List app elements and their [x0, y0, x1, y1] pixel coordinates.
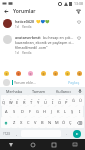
staticText: P [65, 100, 68, 105]
button[interactable]: G [34, 106, 41, 117]
staticText: L [64, 109, 67, 114]
button[interactable]: Filter [75, 8, 82, 15]
button[interactable]: F [26, 106, 34, 117]
staticText: E [16, 100, 19, 105]
button[interactable]: X [18, 117, 25, 128]
button[interactable]: 1 [1, 95, 7, 106]
button[interactable]: Like [76, 35, 82, 41]
button[interactable]: Back [3, 8, 10, 15]
staticText: Yanıtla [22, 51, 32, 55]
button[interactable]: hatice0428 [0, 16, 85, 32]
button[interactable]: Keyboard [64, 139, 85, 150]
staticText: Ü [79, 98, 82, 103]
button[interactable]: Ü [77, 95, 84, 106]
staticText: A [5, 109, 8, 114]
button[interactable]: Ğ [70, 95, 77, 106]
button[interactable]: Kullanıcı [51, 89, 76, 94]
staticText: 1d [15, 51, 19, 55]
button[interactable]: 0 [63, 95, 70, 106]
button[interactable]: J [48, 106, 55, 117]
button[interactable]: Z [11, 117, 18, 128]
button[interactable]: K [55, 106, 62, 117]
button[interactable]: Back [0, 139, 22, 150]
staticText: Tamam [32, 89, 46, 94]
button[interactable]: 8 [49, 95, 56, 106]
button[interactable]: Emoji [3, 70, 9, 76]
staticText: 4 [24, 97, 26, 100]
staticText: G [36, 109, 39, 114]
staticText: R [23, 100, 26, 105]
button[interactable]: D [18, 106, 26, 117]
button[interactable]: Emoji [15, 70, 21, 76]
staticText: 9 [59, 97, 61, 100]
staticText: I [52, 100, 54, 105]
button[interactable]: , [12, 129, 20, 138]
staticText: Ğ [72, 98, 75, 103]
button[interactable]: Voice input [76, 89, 83, 93]
button[interactable]: M [53, 117, 60, 128]
button[interactable]: C [25, 117, 32, 128]
staticText: filmadilmedil .com" [15, 45, 48, 50]
button[interactable]: Emoji [40, 70, 46, 76]
button[interactable]: Like [76, 19, 82, 25]
staticText: F [29, 109, 32, 114]
button[interactable]: 9 [56, 95, 63, 106]
staticText: Yorum ekle... [14, 80, 66, 85]
staticText: N [48, 120, 52, 125]
button[interactable]: Ş [69, 106, 76, 117]
button[interactable]: 2 [7, 95, 14, 106]
staticText: Ç [69, 120, 72, 125]
button[interactable]: Shift [1, 117, 11, 128]
button[interactable]: Paylaş [66, 79, 82, 86]
staticText: Q [2, 100, 6, 105]
button[interactable]: Emoji [76, 70, 82, 76]
staticText: Kullanıcı [56, 89, 71, 94]
staticText: Ö [62, 120, 66, 125]
button[interactable]: Ç [67, 117, 74, 128]
staticText: X [20, 120, 23, 125]
staticText: hatice0428 [15, 19, 34, 24]
button[interactable]: Emoji [64, 70, 70, 76]
staticText: S [13, 109, 16, 114]
staticText: 7 [45, 97, 47, 100]
staticText: H [43, 109, 46, 114]
button[interactable]: 4 [21, 95, 28, 106]
staticText: 5 [31, 97, 33, 100]
button[interactable]: B [39, 117, 46, 128]
staticText: B [41, 120, 44, 125]
staticText: V [34, 120, 37, 125]
button[interactable]: S [10, 106, 18, 117]
button[interactable]: A [2, 106, 10, 117]
button[interactable]: 3 [14, 95, 21, 106]
button[interactable]: L [62, 106, 69, 117]
staticText: . [66, 131, 67, 136]
button[interactable]: N [46, 117, 53, 128]
button[interactable]: H [41, 106, 48, 117]
button[interactable]: 7 [42, 95, 49, 106]
button[interactable]: Backspace [74, 117, 84, 128]
button[interactable]: avatarserbestt [0, 32, 85, 58]
button[interactable]: Send [70, 129, 84, 138]
staticText: U [44, 100, 47, 105]
staticText: J [51, 109, 53, 114]
button[interactable]: Recent apps [43, 139, 64, 150]
staticText: avatarserbestt [15, 35, 41, 40]
button[interactable]: 5 [28, 95, 35, 106]
button[interactable]: I [76, 106, 83, 117]
staticText: K [57, 109, 60, 114]
button[interactable]: ?123 [1, 129, 12, 138]
button[interactable]: Home [22, 139, 43, 150]
staticText: ?123 [3, 132, 10, 136]
button[interactable]: Emoji [52, 70, 58, 76]
button[interactable]: Ö [60, 117, 67, 128]
staticText: 8 [52, 97, 54, 100]
staticText: 1d [15, 25, 19, 29]
button[interactable]: Tamam [26, 89, 51, 94]
button[interactable]: 6 [35, 95, 42, 106]
button[interactable]: Merhaba [2, 89, 26, 94]
button[interactable]: V [32, 117, 39, 128]
button[interactable]: Emoji [27, 70, 33, 76]
staticText: I [79, 109, 81, 114]
